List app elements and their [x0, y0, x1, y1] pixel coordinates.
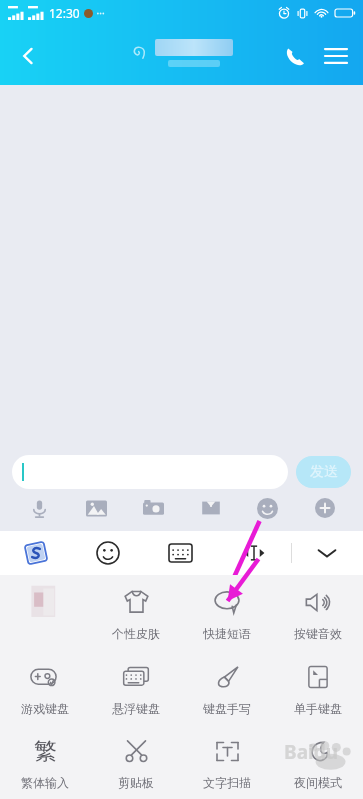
button[interactable]: 悬浮键盘: [90, 650, 181, 725]
button[interactable]: 游戏键盘: [0, 650, 90, 725]
button[interactable]: 剪贴板: [90, 725, 181, 799]
staticText: 键盘手写: [203, 701, 251, 716]
button[interactable]: Call: [273, 35, 315, 77]
button[interactable]: More: [296, 489, 353, 527]
staticText: 繁: [34, 737, 57, 766]
button[interactable]: 夜间模式: [272, 725, 363, 799]
button[interactable]: Voice: [10, 489, 68, 527]
staticText: 夜间模式: [294, 775, 342, 790]
button[interactable]: 个性皮肤: [90, 575, 181, 650]
button[interactable]: [12, 455, 288, 489]
button[interactable]: Move cursor: [217, 531, 290, 575]
button[interactable]: Envelope: [182, 489, 239, 527]
button[interactable]: 单手键盘: [272, 650, 363, 725]
staticText: 繁体输入: [21, 775, 69, 790]
staticText: 发送: [310, 463, 338, 481]
button[interactable]: 繁: [0, 725, 90, 799]
button[interactable]: 文字扫描: [181, 725, 272, 799]
staticText: 悬浮键盘: [112, 701, 160, 716]
staticText: 快捷短语: [203, 626, 251, 641]
button[interactable]: Menu: [315, 35, 357, 77]
button[interactable]: Camera: [125, 489, 182, 527]
staticText: 剪贴板: [118, 775, 154, 790]
staticText: 按键音效: [294, 626, 342, 641]
staticText: Baidu: [284, 739, 339, 765]
button[interactable]: Emoji: [239, 489, 296, 527]
button[interactable]: [0, 575, 90, 650]
button[interactable]: Sogou input: [0, 531, 72, 575]
button[interactable]: 快捷短语: [181, 575, 272, 650]
staticText: 个性皮肤: [112, 626, 160, 641]
button[interactable]: 键盘手写: [181, 650, 272, 725]
staticText: 游戏键盘: [21, 701, 69, 716]
staticText: 12:30: [49, 5, 80, 21]
staticText: 文字扫描: [203, 775, 251, 790]
button[interactable]: Back: [6, 34, 50, 78]
button[interactable]: Keyboard: [144, 531, 217, 575]
staticText: 单手键盘: [294, 701, 342, 716]
button[interactable]: Emoji: [72, 531, 144, 575]
button[interactable]: 发送: [296, 456, 351, 488]
button[interactable]: Hide keyboard: [290, 531, 363, 575]
button[interactable]: Gallery: [68, 489, 125, 527]
button[interactable]: 按键音效: [272, 575, 363, 650]
